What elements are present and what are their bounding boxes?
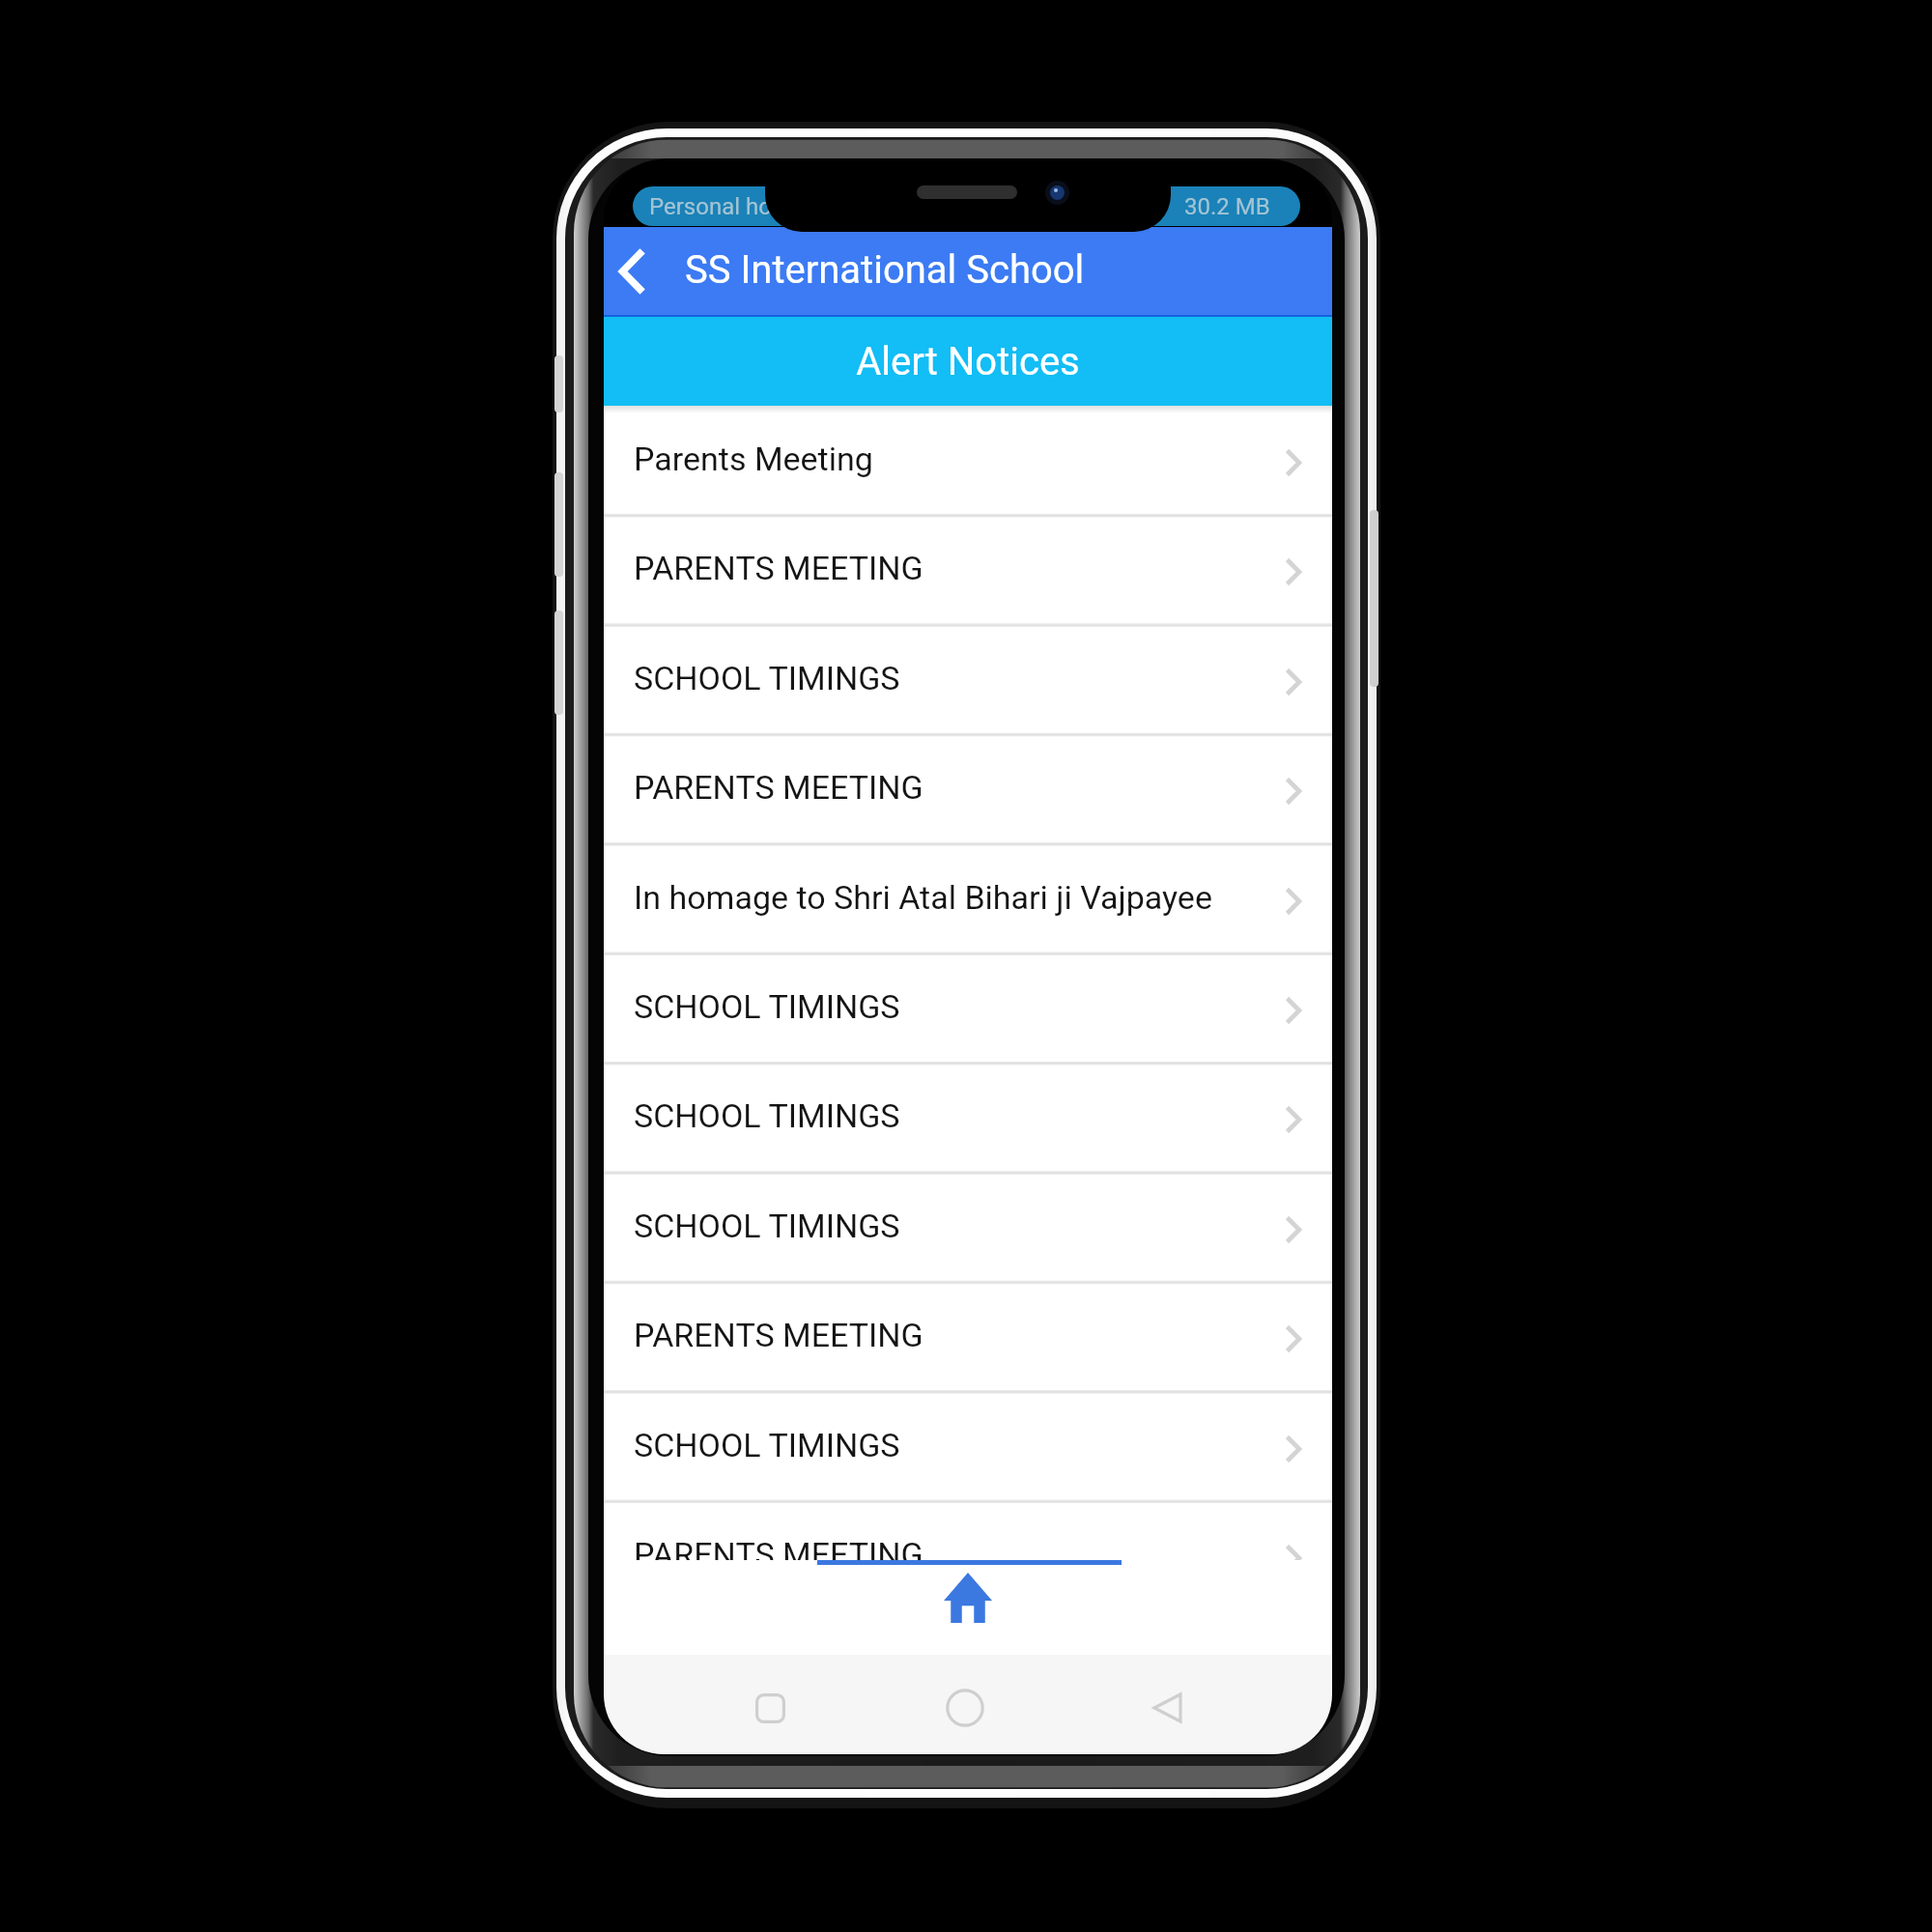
- button[interactable]: SCHOOL TIMINGS: [604, 1173, 1332, 1282]
- staticText: SS International School: [685, 247, 1085, 293]
- staticText: SCHOOL TIMINGS: [634, 987, 900, 1026]
- button[interactable]: SCHOOL TIMINGS: [604, 953, 1332, 1063]
- staticText: SCHOOL TIMINGS: [634, 659, 900, 697]
- staticText: Parents Meeting: [634, 440, 873, 478]
- staticText: SCHOOL TIMINGS: [634, 1096, 900, 1135]
- staticText: SCHOOL TIMINGS: [634, 1426, 900, 1464]
- button[interactable]: Home: [922, 1664, 1009, 1751]
- button[interactable]: Alert Notices: [604, 317, 1332, 406]
- button[interactable]: PARENTS MEETING: [604, 1282, 1332, 1391]
- button[interactable]: SCHOOL TIMINGS: [604, 1392, 1332, 1501]
- staticText: Personal ho: [649, 193, 772, 220]
- button[interactable]: Back: [604, 227, 1332, 315]
- button[interactable]: Home: [817, 1560, 1122, 1655]
- staticText: Alert Notices: [856, 339, 1080, 384]
- button[interactable]: SCHOOL TIMINGS: [604, 625, 1332, 734]
- button[interactable]: Parents Meeting: [604, 406, 1332, 515]
- staticText: PARENTS MEETING: [634, 549, 923, 587]
- button[interactable]: PARENTS MEETING: [604, 1501, 1332, 1560]
- staticText: PARENTS MEETING: [634, 1316, 923, 1354]
- button[interactable]: PARENTS MEETING: [604, 734, 1332, 843]
- staticText: PARENTS MEETING: [634, 768, 923, 807]
- button[interactable]: SCHOOL TIMINGS: [604, 1063, 1332, 1172]
- button[interactable]: PARENTS MEETING: [604, 515, 1332, 624]
- button[interactable]: Recents: [726, 1664, 813, 1751]
- staticText: 30.2 MB: [1184, 193, 1270, 220]
- button[interactable]: Back: [1123, 1664, 1210, 1751]
- staticText: PARENTS MEETING: [634, 1535, 923, 1560]
- button[interactable]: Back: [604, 238, 659, 305]
- button[interactable]: In homage to Shri Atal Bihari ji Vajpaye…: [604, 844, 1332, 953]
- staticText: SCHOOL TIMINGS: [634, 1207, 900, 1245]
- staticText: In homage to Shri Atal Bihari ji Vajpaye…: [634, 878, 1212, 917]
